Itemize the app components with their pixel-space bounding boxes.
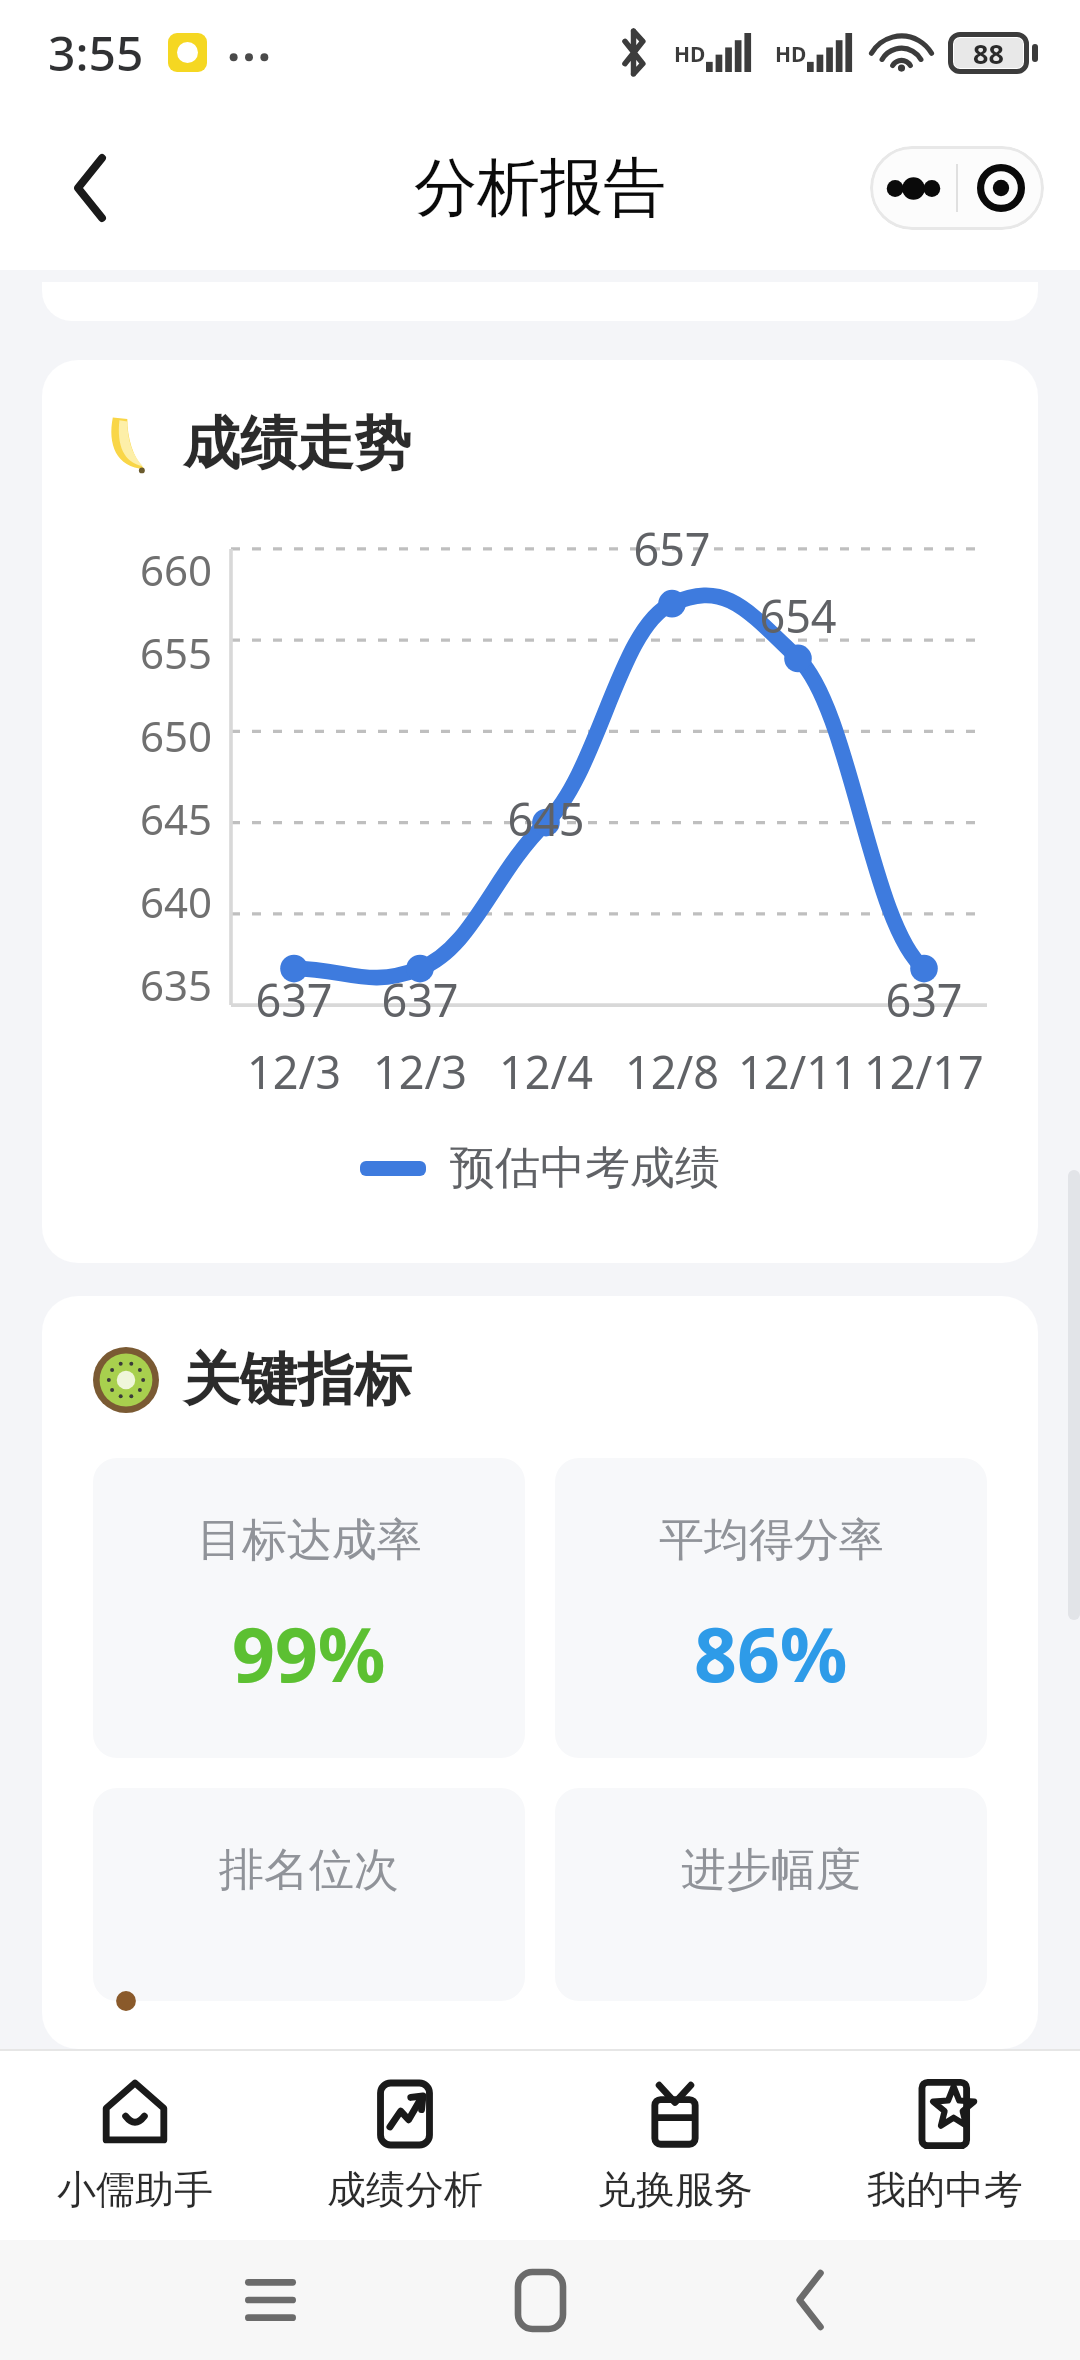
staticText: 12/17 bbox=[864, 1041, 984, 1102]
staticText: 小儒助手 bbox=[57, 2165, 213, 2214]
staticText: 成绩分析 bbox=[327, 2165, 483, 2214]
button[interactable]: 成绩分析 bbox=[270, 2051, 540, 2240]
staticText: 635 bbox=[140, 956, 213, 1013]
staticText: 637 bbox=[885, 969, 963, 1030]
staticText: 660 bbox=[140, 541, 213, 598]
staticText: 分析报告 bbox=[414, 148, 666, 227]
staticText: 12/8 bbox=[625, 1041, 719, 1102]
button[interactable]: 兑换服务 bbox=[540, 2051, 810, 2240]
button[interactable]: 返回 bbox=[675, 2240, 945, 2360]
staticText: 88 bbox=[973, 35, 1004, 72]
staticText: 650 bbox=[140, 707, 213, 764]
staticText: 12/4 bbox=[499, 1041, 593, 1102]
button[interactable]: 目标达成率 bbox=[93, 1458, 525, 1758]
button[interactable]: 我的中考 bbox=[810, 2051, 1080, 2240]
staticText: 645 bbox=[507, 788, 585, 849]
button[interactable]: 平均得分率 bbox=[555, 1458, 987, 1758]
staticText: 进步幅度 bbox=[681, 1842, 861, 1899]
staticText: 平均得分率 bbox=[659, 1512, 884, 1569]
button[interactable]: 关闭 bbox=[958, 146, 1044, 230]
staticText: 99% bbox=[232, 1602, 386, 1704]
staticText: 目标达成率 bbox=[197, 1512, 422, 1569]
button[interactable]: 排名位次 bbox=[93, 1788, 525, 2001]
staticText: 645 bbox=[140, 790, 213, 847]
staticText: 3:55 bbox=[48, 20, 144, 85]
button[interactable]: 小儒助手 bbox=[0, 2051, 270, 2240]
staticText: 预估中考成绩 bbox=[450, 1140, 720, 1197]
staticText: 兑换服务 bbox=[597, 2165, 753, 2214]
staticText: 12/3 bbox=[373, 1041, 467, 1102]
button[interactable]: 进步幅度 bbox=[555, 1788, 987, 2001]
staticText: 成绩走势 bbox=[183, 408, 411, 480]
staticText: 637 bbox=[255, 969, 333, 1030]
staticText: 86% bbox=[694, 1602, 848, 1704]
staticText: HD bbox=[674, 40, 706, 69]
button[interactable]: 主屏幕 bbox=[405, 2240, 675, 2360]
staticText: 637 bbox=[381, 969, 459, 1030]
staticText: 657 bbox=[633, 518, 711, 579]
staticText: 12/11 bbox=[738, 1041, 858, 1102]
staticText: 关键指标 bbox=[183, 1344, 411, 1416]
button[interactable]: 最近任务 bbox=[135, 2240, 405, 2360]
staticText: 我的中考 bbox=[867, 2165, 1023, 2214]
staticText: 655 bbox=[140, 624, 213, 681]
staticText: HD bbox=[775, 40, 807, 69]
staticText: 640 bbox=[140, 873, 213, 930]
button[interactable]: 返回 bbox=[24, 122, 156, 254]
staticText: 654 bbox=[759, 585, 837, 646]
staticText: 排名位次 bbox=[219, 1842, 399, 1899]
button[interactable]: 更多 bbox=[870, 146, 956, 230]
staticText: 12/3 bbox=[247, 1041, 341, 1102]
